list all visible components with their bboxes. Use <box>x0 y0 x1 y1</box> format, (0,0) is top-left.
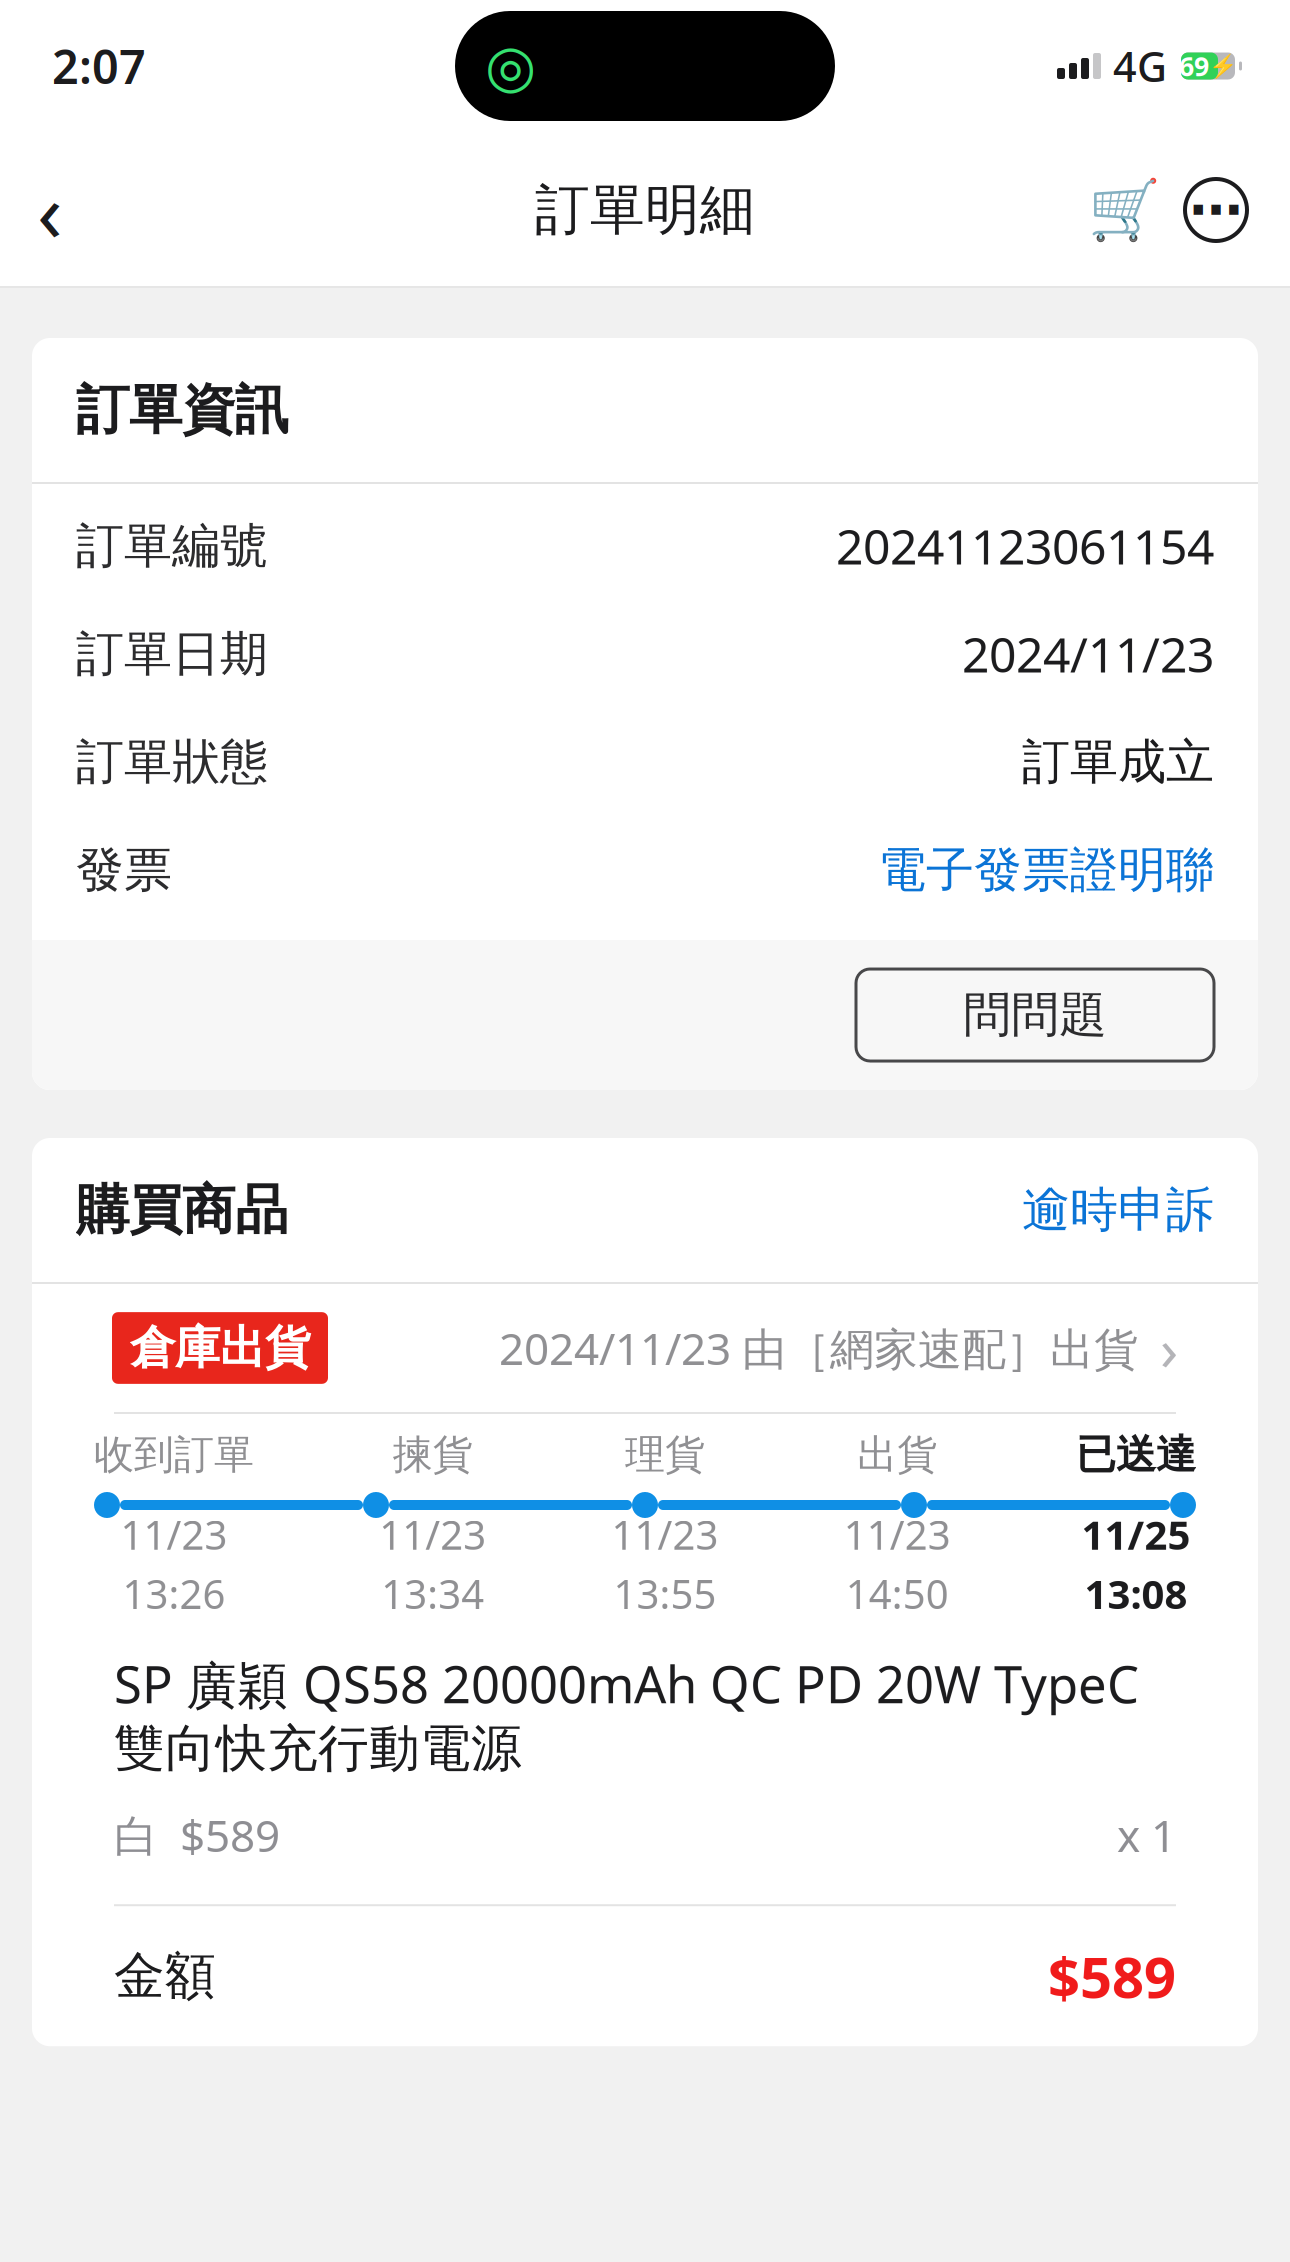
staticText: 訂單資訊 <box>76 377 288 443</box>
staticText: 購買商品 <box>76 1177 288 1243</box>
staticText: 2024/11/23 <box>962 622 1214 686</box>
staticText: 🛒 <box>1087 176 1160 243</box>
staticText: 14:50 <box>846 1567 949 1620</box>
staticText: 訂單成立 <box>1022 732 1214 791</box>
staticText: 訂單明細 <box>535 176 755 243</box>
staticText: 2024/11/23 由［網家速配］出貨 <box>499 1319 1138 1377</box>
button[interactable]: More options <box>1170 164 1262 256</box>
staticText: 11/23 <box>379 1508 486 1561</box>
staticText: 11/23 <box>611 1508 718 1561</box>
button[interactable]: 問問題 <box>856 969 1214 1061</box>
staticText: › <box>1160 1309 1178 1387</box>
staticText: 69 <box>1179 48 1209 84</box>
staticText: x 1 <box>1117 1806 1176 1864</box>
staticText: ‹ <box>37 155 63 265</box>
staticText: $589 <box>1048 1939 1176 2013</box>
staticText: 理貨 <box>625 1430 705 1479</box>
button[interactable]: Back <box>0 160 100 260</box>
staticText: 白 $589 <box>114 1806 280 1864</box>
button[interactable]: 電子發票證明聯 <box>878 840 1214 899</box>
staticText: 4G <box>1113 39 1167 93</box>
staticText: 11/25 <box>1081 1508 1190 1561</box>
staticText: 13:34 <box>381 1567 484 1620</box>
staticText: ⚡ <box>1209 53 1237 79</box>
staticText: 20241123061154 <box>836 514 1214 578</box>
button[interactable]: 倉庫出貨 <box>32 1284 1258 1412</box>
button[interactable]: 逾時申訴 <box>1022 1180 1214 1239</box>
staticText: 訂單編號 <box>76 516 268 575</box>
staticText: 2:07 <box>52 35 146 97</box>
staticText: 13:55 <box>613 1567 716 1620</box>
staticText: 金額 <box>114 1945 216 2007</box>
staticText: 訂單日期 <box>76 624 268 683</box>
staticText: 電子發票證明聯 <box>878 840 1214 899</box>
staticText: 13:08 <box>1084 1567 1187 1620</box>
staticText: 訂單狀態 <box>76 732 268 791</box>
staticText: 逾時申訴 <box>1022 1180 1214 1239</box>
staticText: 倉庫出貨 <box>130 1320 310 1376</box>
staticText: 11/23 <box>120 1508 227 1561</box>
button[interactable]: Cart <box>1078 164 1170 256</box>
staticText: 13:26 <box>122 1567 225 1620</box>
staticText: ◎ <box>485 33 536 99</box>
staticText: 已送達 <box>1076 1430 1196 1479</box>
staticText: 收到訂單 <box>94 1430 254 1479</box>
staticText: ⋯ <box>1189 180 1242 240</box>
staticText: SP 廣穎 QS58 20000mAh QC PD 20W TypeC 雙向快充… <box>114 1650 1139 1780</box>
staticText: 11/23 <box>844 1508 951 1561</box>
staticText: 發票 <box>76 840 172 899</box>
staticText: 揀貨 <box>393 1430 473 1479</box>
staticText: 問問題 <box>963 985 1107 1044</box>
staticText: 出貨 <box>857 1430 937 1479</box>
